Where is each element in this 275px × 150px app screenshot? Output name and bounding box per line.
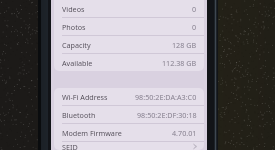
button[interactable]: SEID bbox=[54, 142, 204, 150]
button[interactable]: Capacity bbox=[54, 36, 204, 54]
staticText: Photos bbox=[62, 22, 86, 32]
staticText: 98:50:2E:DF:30:18 bbox=[137, 110, 197, 120]
staticText: 112.38 GB bbox=[162, 58, 197, 68]
staticText: Capacity bbox=[62, 40, 91, 50]
staticText: Wi-Fi Address bbox=[62, 92, 108, 102]
staticText: Modem Firmware bbox=[62, 128, 122, 138]
staticText: 98:50:2E:DA:A3:C0 bbox=[135, 92, 197, 102]
button[interactable]: Videos bbox=[54, 0, 204, 18]
staticText: SEID bbox=[62, 142, 78, 150]
staticText: 0 bbox=[192, 4, 197, 14]
button[interactable]: Wi-Fi Address bbox=[54, 88, 204, 106]
staticText: 128 GB bbox=[172, 40, 197, 50]
button[interactable]: Modem Firmware bbox=[54, 124, 204, 142]
staticText: Bluetooth bbox=[62, 110, 96, 120]
button[interactable]: Photos bbox=[54, 18, 204, 36]
staticText: 0 bbox=[192, 22, 197, 32]
button[interactable]: Available bbox=[54, 54, 204, 71]
button[interactable]: Bluetooth bbox=[54, 106, 204, 124]
staticText: Videos bbox=[62, 4, 85, 14]
other: SEID details bbox=[193, 143, 197, 150]
staticText: 4.70.01 bbox=[172, 128, 197, 138]
staticText: Available bbox=[62, 58, 93, 68]
